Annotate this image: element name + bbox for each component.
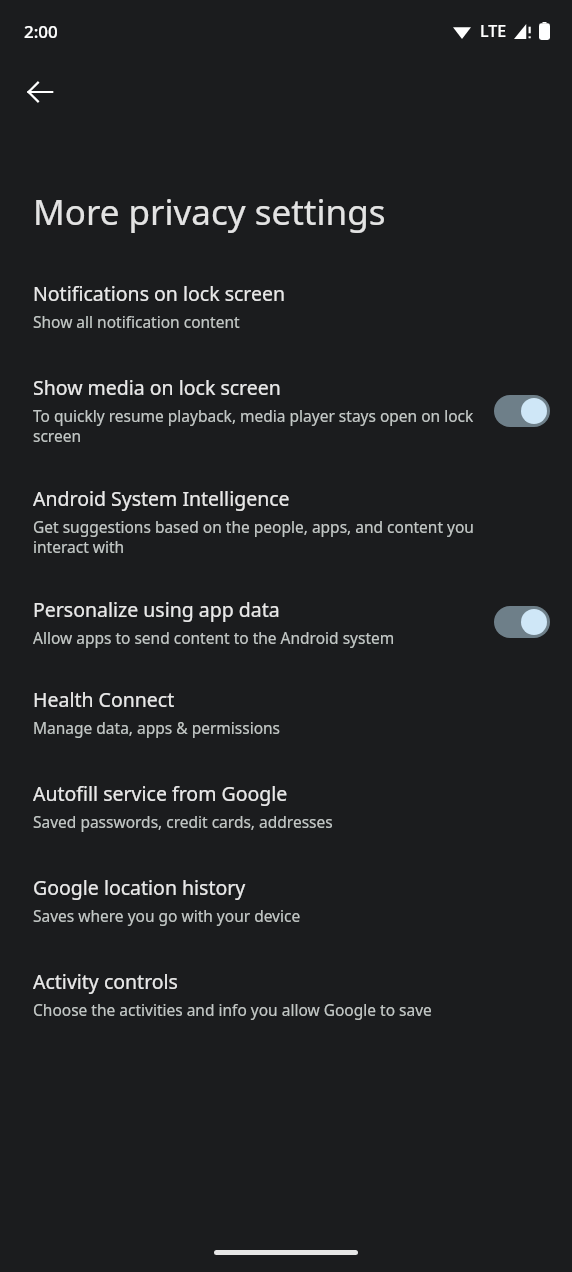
button[interactable]: Personalize using app data — [0, 596, 572, 648]
button[interactable]: Autofill service from Google — [0, 780, 572, 832]
staticText: Saved passwords, credit cards, addresses — [33, 811, 333, 832]
button[interactable]: Notifications on lock screen — [0, 280, 572, 332]
staticText: 2:00 — [24, 20, 58, 43]
button[interactable]: Back — [16, 68, 64, 116]
staticText: Show all notification content — [33, 311, 240, 332]
staticText: More privacy settings — [33, 188, 548, 236]
button[interactable]: Activity controls — [0, 968, 572, 1020]
staticText: Get suggestions based on the people, app… — [33, 516, 520, 558]
staticText: To quickly resume playback, media player… — [33, 405, 474, 447]
staticText: Activity controls — [33, 968, 178, 995]
staticText: Android System Intelligence — [33, 485, 290, 512]
button[interactable]: Show media on lock screen — [0, 374, 572, 447]
staticText: Show media on lock screen — [33, 374, 281, 401]
staticText: Notifications on lock screen — [33, 280, 286, 307]
staticText: Manage data, apps & permissions — [33, 717, 281, 738]
button[interactable]: Toggle — [494, 606, 550, 638]
staticText: Personalize using app data — [33, 596, 280, 623]
button[interactable]: Toggle — [494, 395, 550, 427]
button[interactable]: Health Connect — [0, 686, 572, 738]
staticText: Choose the activities and info you allow… — [33, 999, 432, 1020]
staticText: Health Connect — [33, 686, 175, 713]
button[interactable]: Android System Intelligence — [0, 485, 572, 558]
staticText: Google location history — [33, 874, 246, 901]
staticText: LTE — [480, 20, 507, 42]
button[interactable]: Google location history — [0, 874, 572, 926]
staticText: Autofill service from Google — [33, 780, 288, 807]
staticText: Allow apps to send content to the Androi… — [33, 627, 395, 648]
staticText: Saves where you go with your device — [33, 905, 301, 926]
